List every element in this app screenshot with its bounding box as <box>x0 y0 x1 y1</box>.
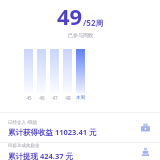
staticText: 49 <box>57 1 83 31</box>
staticText: 累计获得收益 11023.41 元 <box>8 127 97 137</box>
staticText: 已经存入 49期 <box>8 119 37 125</box>
button[interactable]: 已经存入 49期 <box>0 113 160 142</box>
staticText: 46 <box>39 95 45 101</box>
staticText: 目标达成奖励金 <box>8 143 40 149</box>
staticText: 本周 <box>76 95 85 101</box>
staticText: 已参与周数 <box>68 32 93 38</box>
button[interactable]: 目标达成奖励金 <box>0 143 160 160</box>
other: Withdrawals <box>139 145 152 158</box>
staticText: 47 <box>52 95 58 101</box>
staticText: /52周 <box>83 17 104 28</box>
staticText: 45 <box>26 95 32 101</box>
other: Savings balance <box>139 121 152 134</box>
staticText: 48 <box>65 95 71 101</box>
staticText: 累计提现 424.37 元 <box>8 151 73 160</box>
